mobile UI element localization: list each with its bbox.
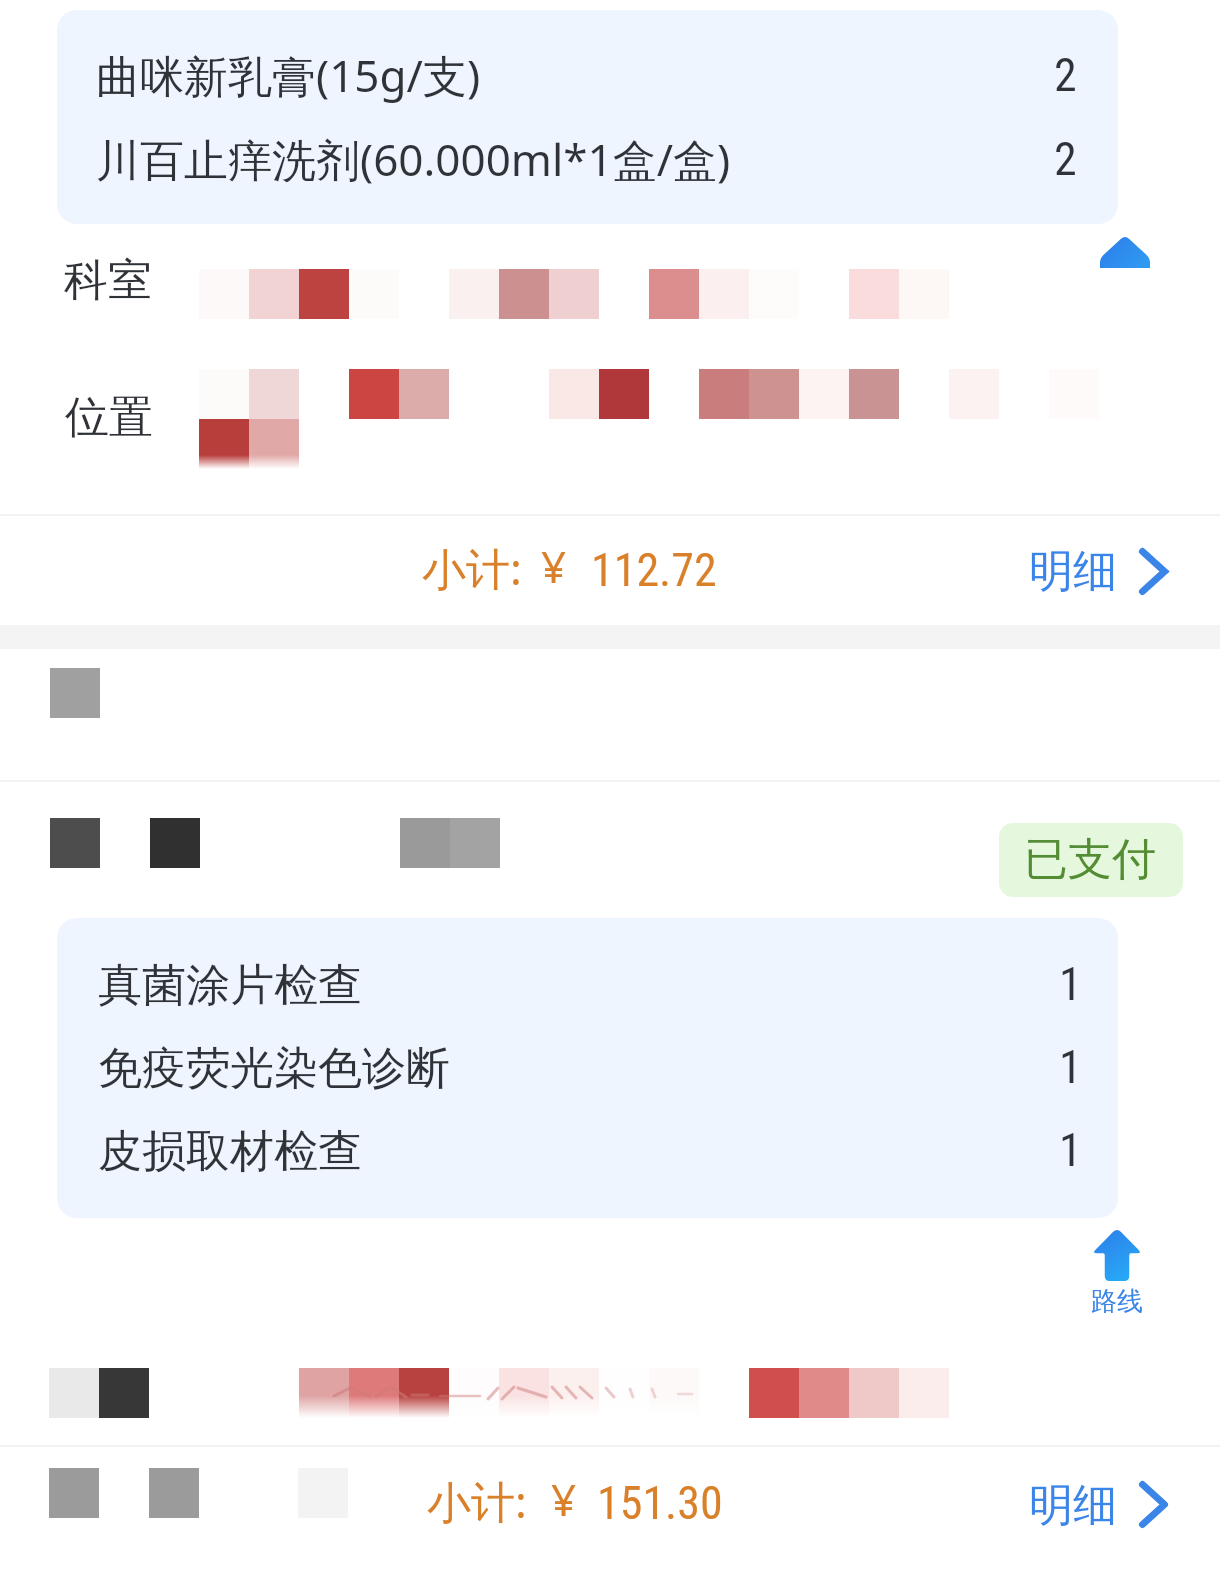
staticText: 151.30 — [597, 1476, 723, 1530]
staticText: 位置 — [65, 390, 153, 445]
button[interactable]: Route — [1080, 1228, 1156, 1320]
staticText: 科室 — [64, 253, 152, 308]
button[interactable]: 已支付 — [999, 823, 1183, 897]
staticText: 1 — [1059, 1123, 1082, 1177]
button[interactable]: Route — [1100, 235, 1150, 268]
staticText: 2 — [1054, 48, 1077, 102]
staticText: 皮损取材检查 — [98, 1124, 362, 1179]
staticText: 已支付 — [1024, 832, 1156, 887]
staticText: ¥ — [541, 536, 567, 596]
staticText: 川百止痒洗剂(60.000ml*1盒/盒) — [96, 129, 731, 189]
button[interactable]: 曲咪新乳膏(15g/支) — [57, 10, 1118, 224]
staticText: 路线 — [1091, 1285, 1143, 1318]
staticText: 112.72 — [591, 543, 717, 597]
staticText: 小计: — [422, 538, 522, 598]
staticText: 曲咪新乳膏(15g/支) — [96, 45, 481, 105]
staticText: 1 — [1059, 957, 1082, 1011]
staticText: 明细 — [1029, 1478, 1117, 1533]
staticText: 明细 — [1029, 544, 1117, 599]
staticText: ¥ — [551, 1469, 577, 1529]
staticText: 1 — [1059, 1040, 1082, 1094]
staticText: 免疫荧光染色诊断 — [98, 1041, 450, 1096]
button[interactable]: 小计: — [0, 516, 1220, 618]
staticText: 真菌涂片检查 — [98, 958, 362, 1013]
staticText: 2 — [1054, 132, 1077, 186]
staticText: 小计: — [427, 1471, 527, 1531]
button[interactable]: 小计: — [0, 1447, 1220, 1569]
button[interactable]: 真菌涂片检查 — [57, 918, 1118, 1218]
